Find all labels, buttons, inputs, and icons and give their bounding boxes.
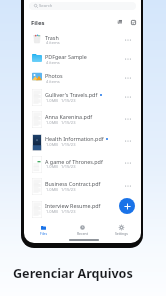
staticText: Photos (45, 72, 63, 79)
staticText: 1/15/23 (61, 98, 76, 103)
button[interactable] (24, 154, 141, 172)
staticText: Health Information.pdf (45, 135, 104, 142)
staticText: Files (31, 19, 45, 27)
staticText: 1.0MB (46, 187, 58, 192)
staticText: 1/15/23 (61, 187, 76, 192)
staticText: 4 items (46, 79, 60, 84)
staticText: A game of Thrones.pdf (45, 158, 103, 165)
staticText: Settings (115, 231, 128, 236)
staticText: 1/15/23 (61, 142, 76, 147)
staticText: Gulliver's Travels.pdf (45, 91, 98, 98)
staticText: PDFgear Sample (45, 53, 87, 60)
button[interactable]: Files (31, 19, 45, 27)
staticText: 1.0MB (46, 120, 58, 125)
button[interactable] (24, 110, 141, 128)
staticText: 1/15/23 (61, 164, 76, 169)
staticText: 1/15/23 (61, 120, 76, 125)
button[interactable]: Files (24, 224, 63, 236)
staticText: 1.0MB (46, 142, 58, 147)
button[interactable]: More options (122, 202, 133, 213)
button[interactable] (24, 177, 141, 195)
button[interactable]: More options (122, 113, 133, 124)
staticText: Business Contract.pdf (45, 180, 101, 187)
button[interactable] (24, 199, 141, 217)
button[interactable]: Add (119, 198, 135, 214)
button[interactable] (24, 88, 141, 106)
button[interactable]: More options (122, 34, 133, 45)
button[interactable]: Recent (63, 224, 102, 236)
staticText: Anna Karenina.pdf (45, 113, 93, 120)
button[interactable]: Search (29, 2, 136, 10)
button[interactable]: More options (122, 72, 133, 83)
button[interactable]: Settings (102, 224, 141, 236)
button[interactable]: More options (122, 180, 133, 191)
staticText: Interview Resume.pdf (45, 202, 101, 209)
staticText: 1.0MB (46, 98, 58, 103)
button[interactable]: More options (122, 53, 133, 64)
button[interactable] (24, 69, 141, 84)
staticText: Search (39, 3, 53, 9)
button[interactable]: Sort (115, 17, 125, 27)
button[interactable]: More options (122, 135, 133, 146)
button[interactable] (24, 31, 141, 46)
button[interactable] (24, 132, 141, 150)
button[interactable] (24, 50, 141, 65)
staticText: Trash (45, 34, 59, 41)
button[interactable]: Select (128, 17, 138, 27)
staticText: 1.0MB (46, 164, 58, 169)
staticText: Recent (77, 231, 88, 236)
staticText: 4 items (46, 60, 60, 65)
staticText: Gerenciar Arquivos (13, 265, 133, 282)
staticText: Files (40, 231, 48, 236)
button[interactable]: More options (122, 157, 133, 168)
staticText: 1/15/23 (61, 209, 76, 214)
button[interactable]: More options (122, 91, 133, 102)
staticText: 1.0MB (46, 209, 58, 214)
staticText: 4 items (46, 40, 60, 45)
